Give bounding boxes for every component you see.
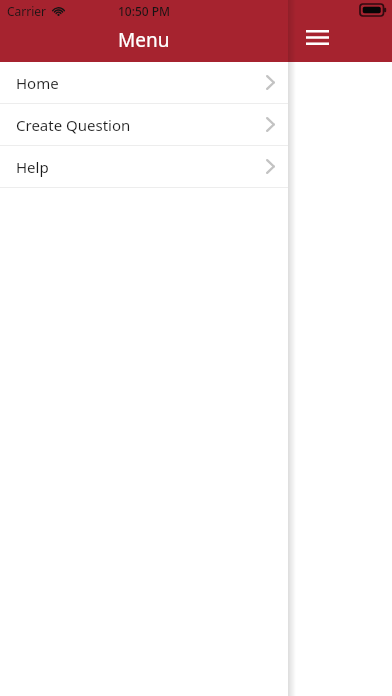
button[interactable]: Open menu [296, 20, 338, 54]
button[interactable]: Help [0, 146, 288, 187]
button[interactable]: Create Question [0, 104, 288, 145]
staticText: Carrier [7, 3, 47, 18]
staticText: Menu [118, 27, 170, 53]
staticText: Create Question [16, 115, 131, 135]
staticText: 10:50 PM [0, 3, 288, 19]
button[interactable]: Home [0, 62, 288, 103]
staticText: Help [16, 157, 49, 177]
staticText: Home [16, 73, 59, 93]
